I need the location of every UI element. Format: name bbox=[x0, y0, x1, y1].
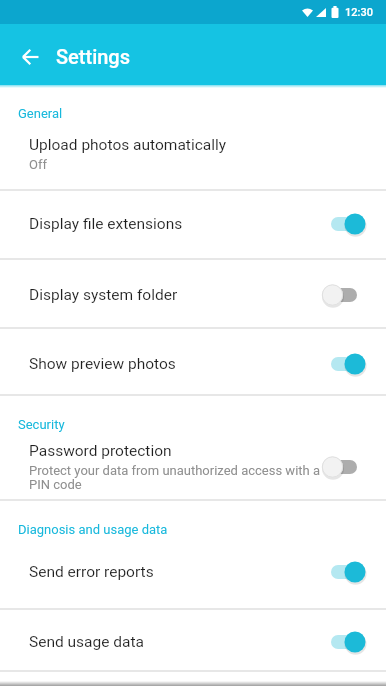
staticText: Protect your data from unauthorized acce… bbox=[29, 463, 321, 493]
staticText: Send error reports bbox=[29, 563, 154, 581]
button[interactable]: Show preview photos bbox=[0, 328, 386, 395]
button[interactable]: Send usage data bbox=[0, 609, 386, 671]
staticText: Show preview photos bbox=[29, 355, 176, 373]
staticText: Password protection bbox=[29, 442, 172, 460]
button[interactable]: Upload photos automatically bbox=[0, 118, 386, 190]
staticText: Display file extensions bbox=[29, 215, 183, 233]
button[interactable]: Display system folder bbox=[0, 259, 386, 328]
staticText: General bbox=[18, 106, 63, 121]
staticText: Off bbox=[29, 157, 47, 172]
button[interactable]: Send error reports bbox=[0, 535, 386, 609]
button[interactable]: Password protection bbox=[0, 430, 386, 500]
button[interactable]: Display file extensions bbox=[0, 190, 386, 259]
button[interactable] bbox=[14, 24, 47, 85]
staticText: Diagnosis and usage data bbox=[18, 522, 168, 537]
staticText: Security bbox=[18, 417, 65, 432]
staticText: Settings bbox=[56, 45, 131, 68]
staticText: Display system folder bbox=[29, 286, 178, 304]
staticText: 12:30 bbox=[345, 6, 373, 19]
staticText: Send usage data bbox=[29, 633, 144, 651]
staticText: Upload photos automatically bbox=[29, 136, 227, 154]
